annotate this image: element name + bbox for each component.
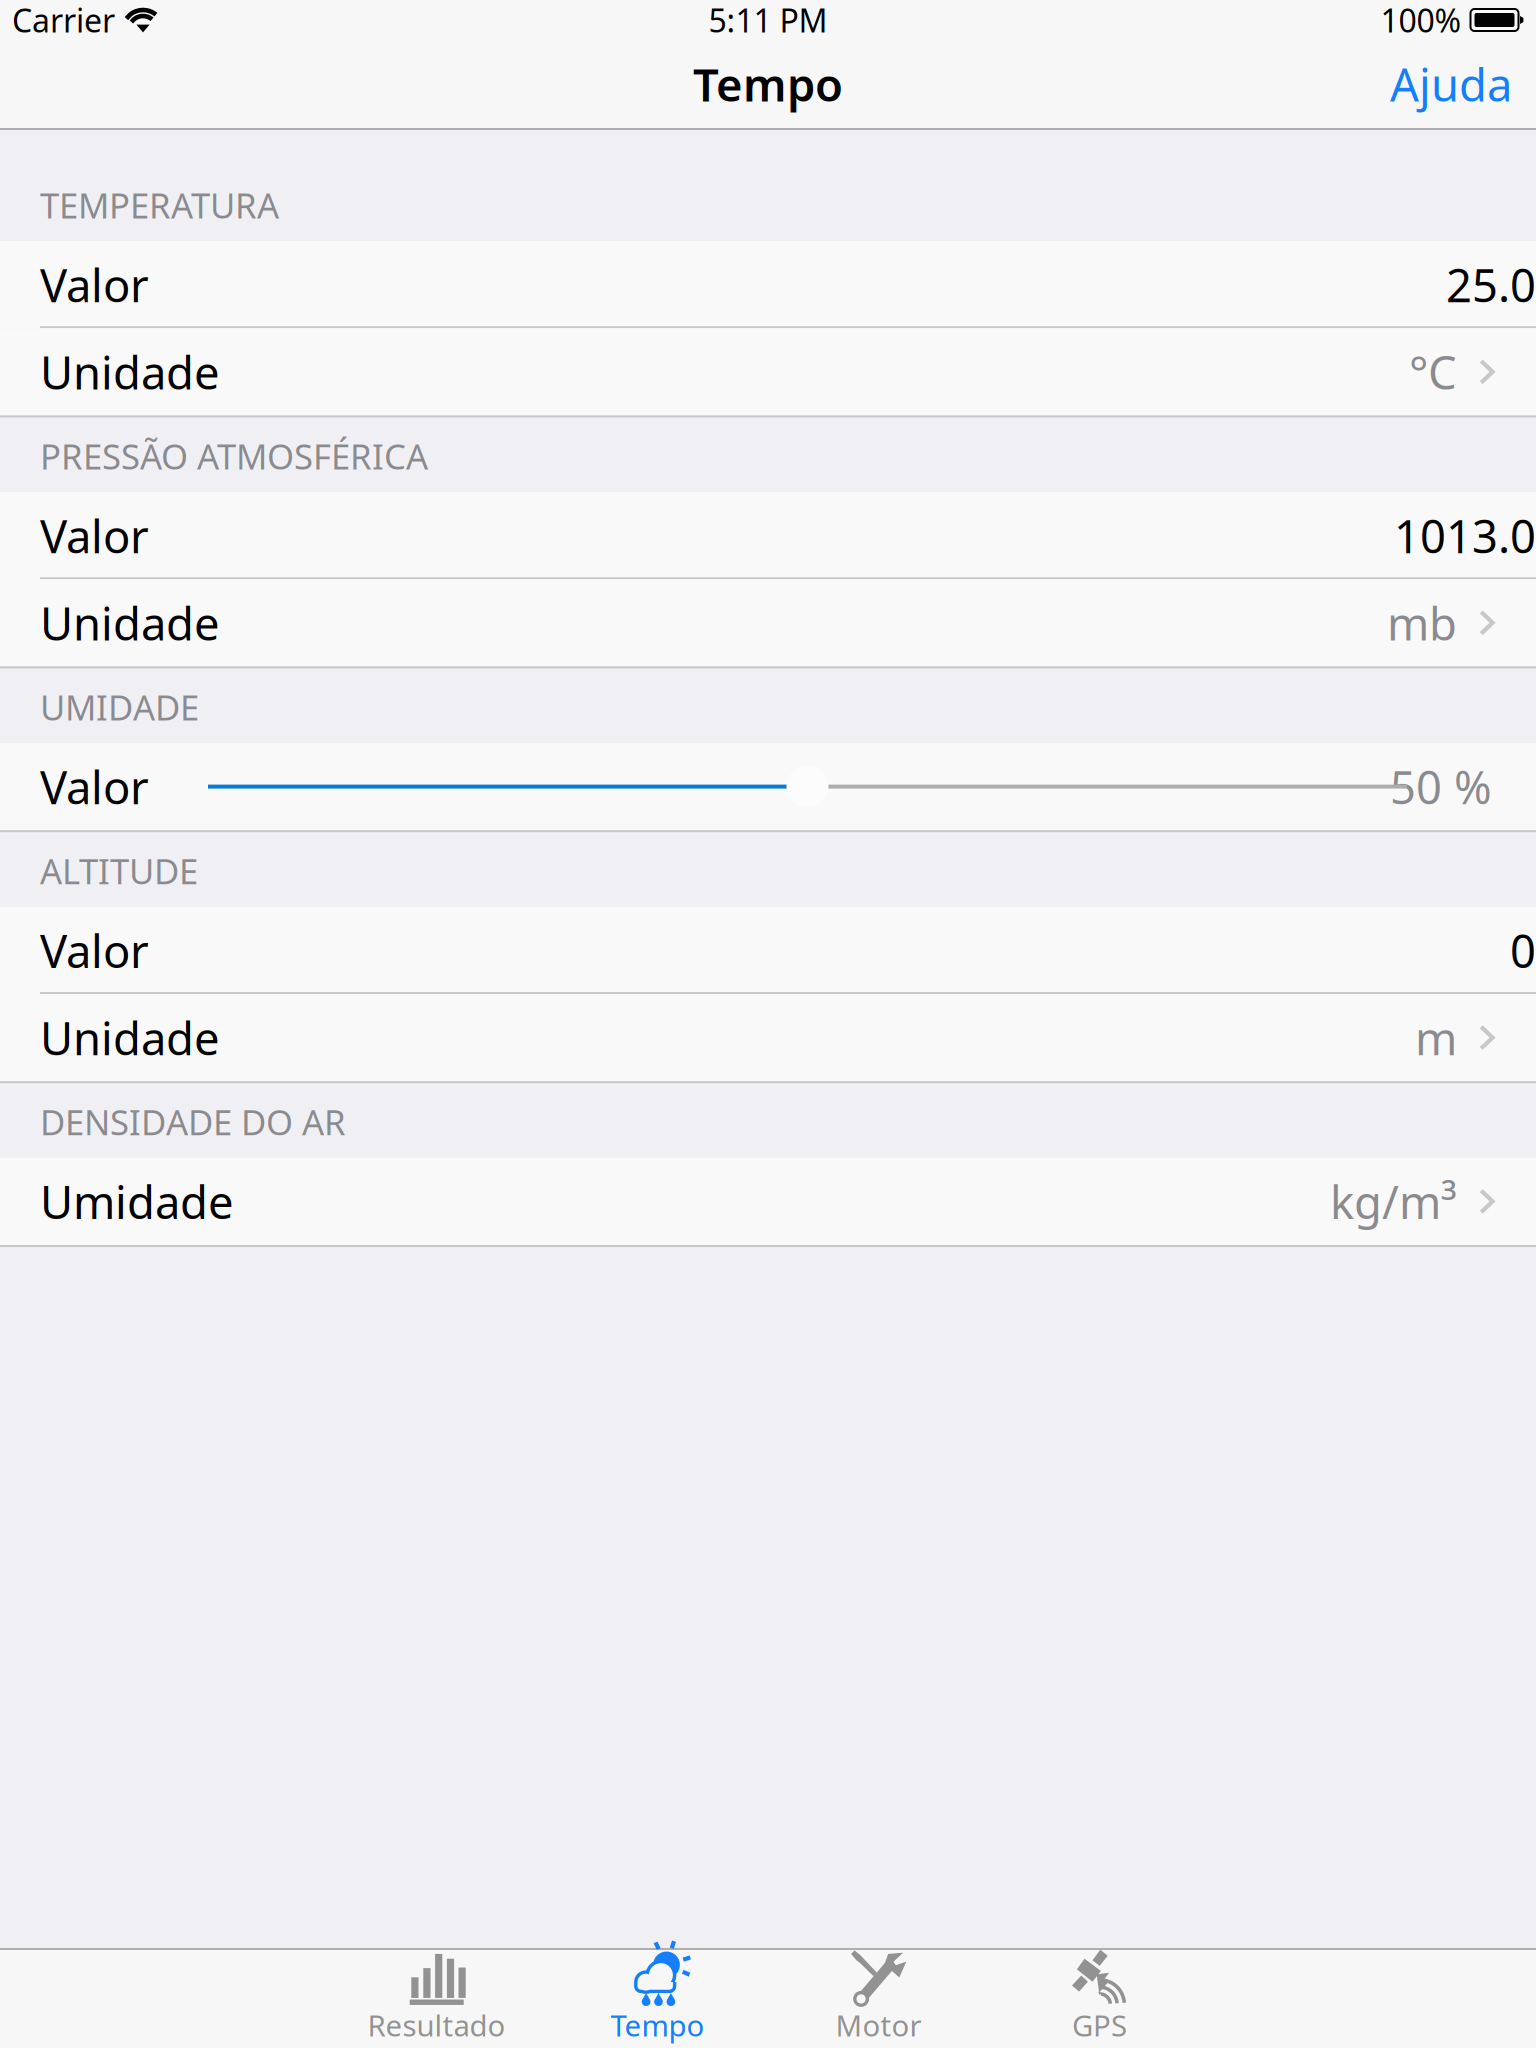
button[interactable]: Unidade (0, 328, 1536, 415)
staticText: GPS (1072, 2005, 1127, 2044)
staticText: 5:11 PM (708, 0, 827, 41)
button[interactable]: Unidade (0, 994, 1536, 1081)
staticText: Unidade (40, 593, 220, 653)
staticText: 100% (1380, 0, 1461, 41)
staticText: Motor (835, 2005, 921, 2044)
staticText: 0 (1510, 920, 1536, 980)
staticText: TEMPERATURA (40, 182, 279, 228)
button[interactable]: Resultado (326, 1950, 547, 2048)
staticText: Ajuda (1390, 54, 1512, 114)
staticText: Unidade (40, 1007, 220, 1068)
staticText: Tempo (693, 54, 843, 114)
button[interactable]: Unidade (0, 579, 1536, 666)
staticText: °C (1409, 342, 1457, 402)
staticText: 25.0 (1446, 254, 1536, 315)
staticText: 1013.0 (1394, 505, 1536, 566)
staticText: PRESSÃO ATMOSFÉRICA (40, 433, 428, 479)
staticText: Valor (40, 254, 149, 315)
staticText: DENSIDADE DO AR (40, 1099, 346, 1145)
staticText: UMIDADE (40, 684, 199, 730)
staticText: ALTITUDE (40, 848, 198, 894)
button[interactable]: Tempo (547, 1950, 768, 2048)
staticText: m (1415, 1007, 1457, 1068)
button[interactable]: Motor (768, 1950, 989, 2048)
staticText: 50 % (1390, 756, 1492, 817)
button[interactable]: Ajuda (1366, 40, 1536, 128)
staticText: Valor (40, 505, 149, 566)
staticText: Carrier (12, 0, 115, 41)
button[interactable]: Umidade (0, 1158, 1536, 1245)
staticText: Valor (40, 756, 149, 817)
button[interactable]: GPS (989, 1950, 1210, 2048)
staticText: Resultado (367, 2005, 505, 2044)
staticText: kg/m³ (1330, 1171, 1457, 1231)
staticText: mb (1387, 593, 1457, 653)
staticText: Tempo (610, 2005, 704, 2044)
staticText: Umidade (40, 1171, 234, 1231)
staticText: Unidade (40, 342, 220, 402)
staticText: Valor (40, 920, 149, 980)
